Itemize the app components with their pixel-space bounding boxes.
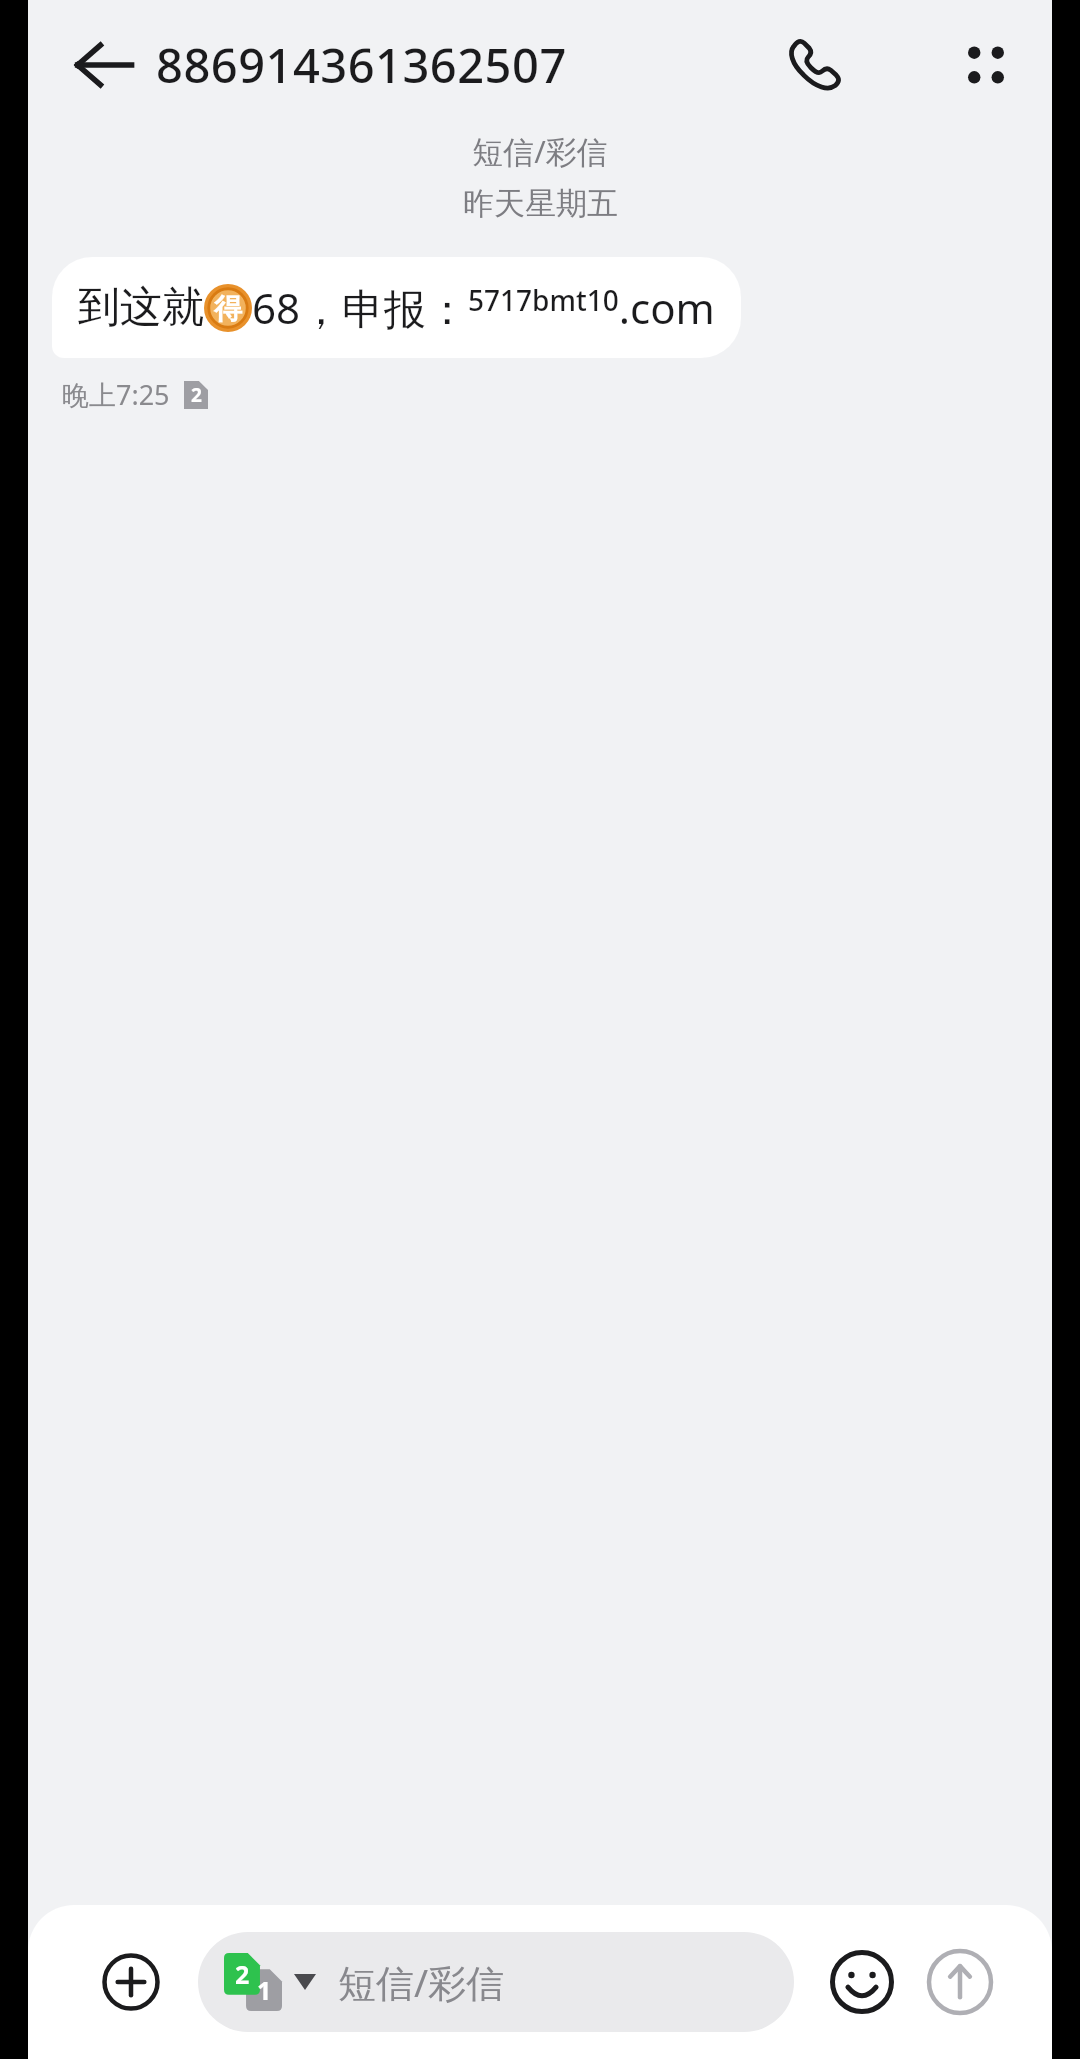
button[interactable]: 到这就: [52, 257, 741, 358]
button[interactable]: Attach: [90, 1941, 172, 2023]
button[interactable]: Send: [916, 1938, 1004, 2026]
button[interactable]: Emoji: [818, 1938, 906, 2026]
staticText: 1: [257, 1973, 272, 2007]
button[interactable]: Call: [770, 19, 862, 111]
staticText: 得: [214, 291, 242, 326]
button[interactable]: Back: [62, 23, 146, 107]
staticText: 短信/彩信: [338, 1956, 505, 2008]
staticText: 晚上7:25: [62, 376, 170, 413]
staticText: 短信/彩信: [472, 130, 608, 172]
staticText: 886914361362507: [156, 33, 567, 97]
staticText: 到这就: [78, 281, 204, 334]
staticText: 2: [235, 1957, 250, 1991]
button[interactable]: 1: [198, 1932, 794, 2032]
staticText: 昨天星期五: [463, 184, 618, 223]
staticText: 2: [191, 382, 202, 408]
button[interactable]: More options: [940, 19, 1032, 111]
staticText: 68，申报：5717bmt10.com: [252, 279, 715, 336]
